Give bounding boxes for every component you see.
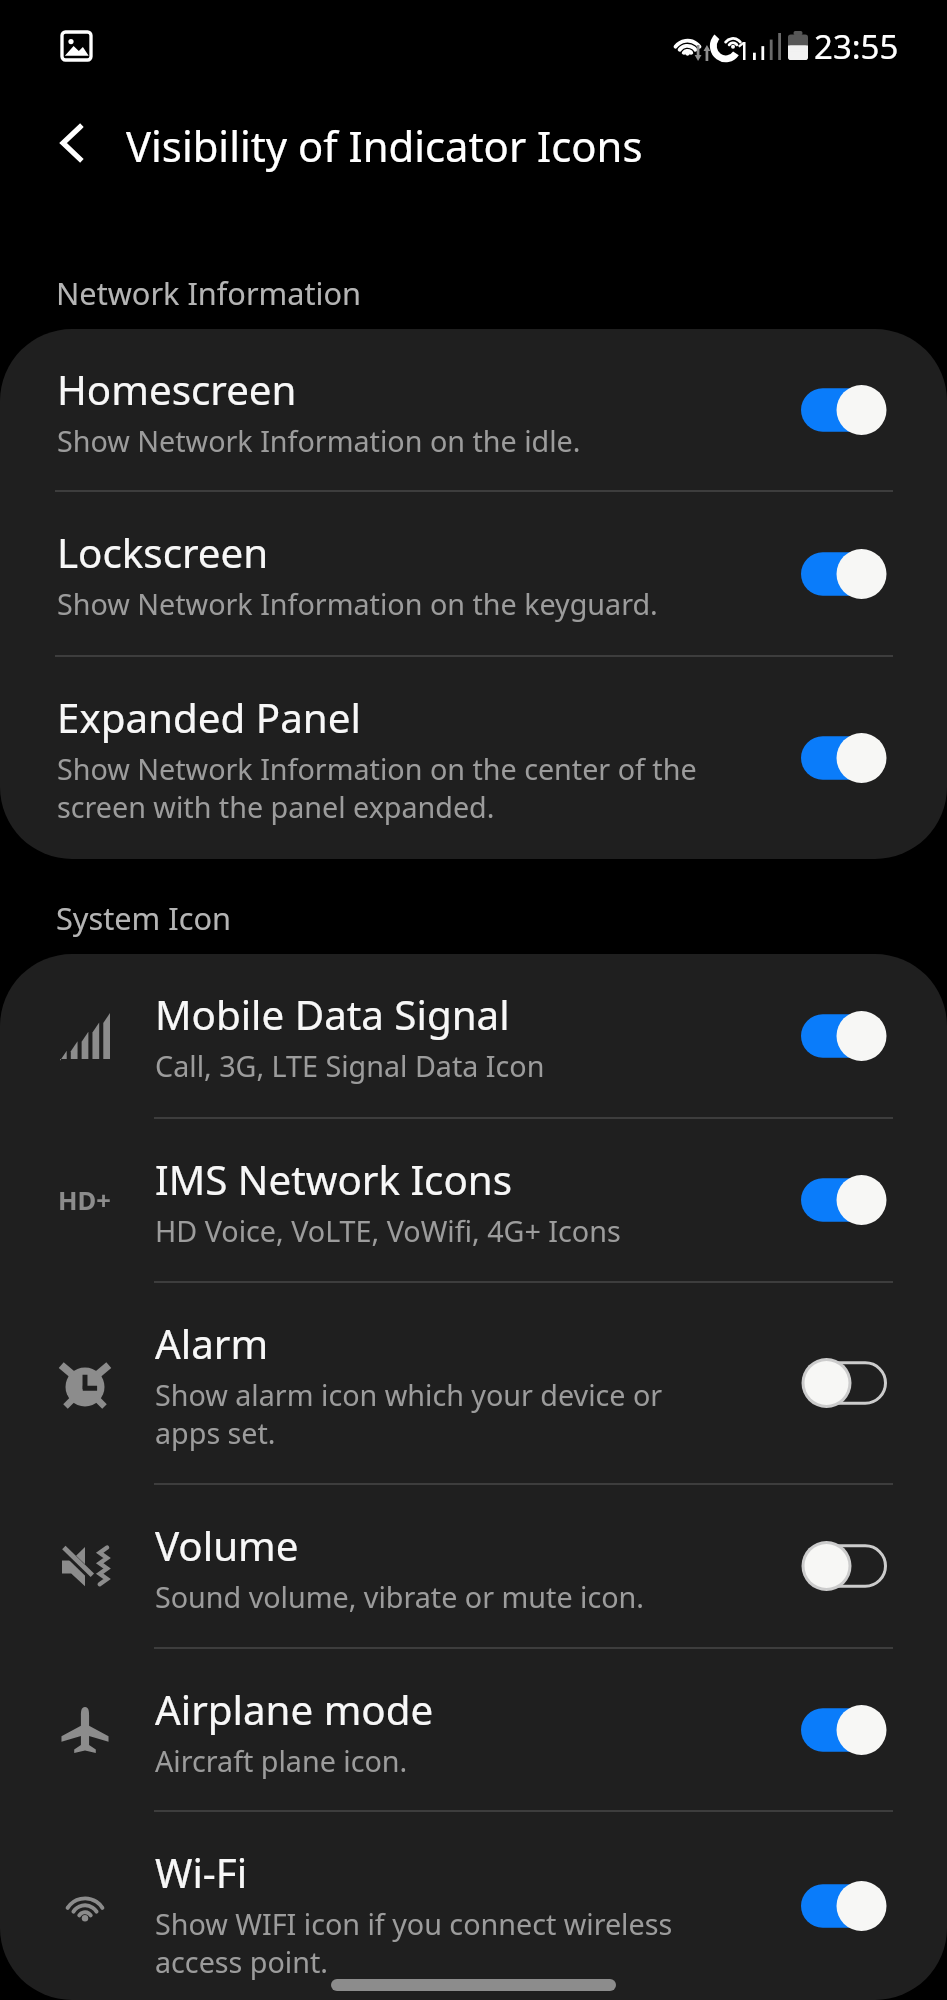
staticText: Show Network Information on the center o…	[57, 749, 705, 826]
staticText: Aircraft plane icon.	[155, 1741, 408, 1780]
button[interactable]: Homescreen	[0, 329, 947, 490]
staticText: Show WIFI icon if you connect wireless a…	[155, 1904, 705, 1981]
button[interactable]: Airplane mode	[792, 1701, 896, 1759]
button[interactable]: Expanded Panel	[0, 657, 947, 859]
staticText: Mobile Data Signal	[155, 987, 510, 1042]
button[interactable]: Mobile Data Signal	[792, 1007, 896, 1065]
staticText: 23:55	[814, 24, 899, 69]
button[interactable]: HD+	[0, 1119, 947, 1281]
staticText: HD Voice, VoLTE, VoWifi, 4G+ Icons	[155, 1211, 621, 1250]
button[interactable]: Lockscreen	[0, 492, 947, 655]
button[interactable]: Mobile Data Signal	[0, 954, 947, 1117]
staticText: Volume	[155, 1518, 299, 1573]
button[interactable]: Airplane mode	[0, 1649, 947, 1810]
staticText: Wi-Fi	[155, 1845, 248, 1900]
button[interactable]: Alarm	[0, 1283, 947, 1483]
staticText: IMS Network Icons	[155, 1152, 512, 1207]
button[interactable]: Wi-Fi	[792, 1877, 896, 1935]
staticText: Network Information	[56, 272, 362, 314]
button[interactable]: Alarm	[792, 1354, 896, 1412]
staticText: Show alarm icon which your device or app…	[155, 1375, 705, 1452]
button[interactable]: Volume	[792, 1537, 896, 1595]
staticText: Expanded Panel	[57, 690, 361, 745]
staticText: Lockscreen	[57, 525, 269, 580]
button[interactable]: Expanded Panel	[792, 729, 896, 787]
staticText: Call, 3G, LTE Signal Data Icon	[155, 1046, 545, 1085]
staticText: Alarm	[155, 1316, 269, 1371]
staticText: System Icon	[56, 897, 231, 939]
button[interactable]: Homescreen	[792, 381, 896, 439]
staticText: Show Network Information on the idle.	[57, 421, 581, 460]
staticText: Sound volume, vibrate or mute icon.	[155, 1577, 645, 1616]
staticText: Homescreen	[57, 362, 297, 417]
button[interactable]: Wi-Fi	[0, 1812, 947, 2000]
button[interactable]: Back	[20, 92, 124, 210]
staticText: Airplane mode	[155, 1682, 434, 1737]
button[interactable]: Lockscreen	[792, 545, 896, 603]
button[interactable]: Volume	[0, 1485, 947, 1647]
staticText: 1	[736, 32, 751, 67]
button[interactable]: IMS Network Icons	[792, 1171, 896, 1229]
staticText: Show Network Information on the keyguard…	[57, 584, 658, 623]
staticText: HD+	[58, 1183, 111, 1218]
staticText: Visibility of Indicator Icons	[126, 117, 643, 174]
